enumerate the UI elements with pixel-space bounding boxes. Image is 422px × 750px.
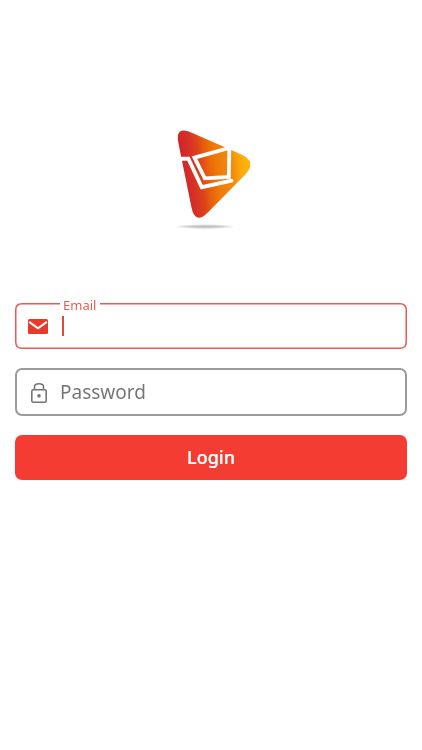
button[interactable]: Login bbox=[15, 435, 407, 480]
button[interactable]: Email bbox=[15, 303, 407, 349]
staticText: Email bbox=[63, 296, 97, 314]
button[interactable]: Password bbox=[15, 368, 407, 416]
staticText: Password bbox=[60, 379, 146, 405]
staticText: Login bbox=[187, 445, 235, 470]
